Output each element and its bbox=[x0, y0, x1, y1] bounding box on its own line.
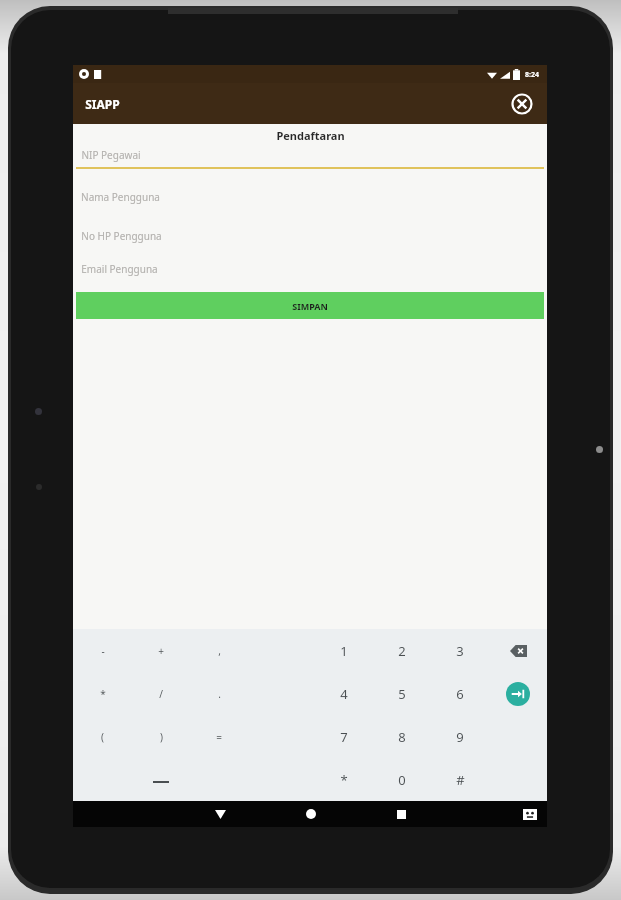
staticText: * bbox=[100, 687, 106, 701]
button[interactable]: Nama Pengguna bbox=[81, 190, 547, 204]
button[interactable]: ) bbox=[132, 715, 190, 758]
staticText: NIP Pegawai bbox=[81, 148, 141, 162]
staticText: . bbox=[218, 687, 221, 701]
staticText: SIMPAN bbox=[292, 300, 328, 312]
button[interactable]: 0 bbox=[373, 758, 431, 801]
button[interactable]: , bbox=[190, 629, 248, 672]
staticText: No HP Pengguna bbox=[81, 229, 162, 243]
button[interactable]: SIMPAN bbox=[76, 292, 544, 319]
button[interactable]: / bbox=[132, 672, 190, 715]
staticText: 9 bbox=[456, 728, 464, 746]
staticText: - bbox=[101, 644, 105, 658]
staticText: , bbox=[218, 644, 221, 658]
button[interactable]: - bbox=[73, 629, 132, 672]
button[interactable]: ( bbox=[73, 715, 132, 758]
button[interactable]: * bbox=[315, 758, 373, 801]
staticText: = bbox=[216, 730, 222, 744]
button[interactable]: 7 bbox=[315, 715, 373, 758]
staticText: / bbox=[159, 687, 163, 701]
staticText: Pendaftaran bbox=[276, 128, 345, 143]
button[interactable]: Recents bbox=[390, 803, 412, 825]
staticText: # bbox=[456, 771, 465, 789]
staticText: 4 bbox=[340, 685, 348, 703]
button[interactable]: NIP Pegawai bbox=[73, 148, 547, 169]
button[interactable]: No HP Pengguna bbox=[81, 229, 547, 243]
staticText: 8:24 bbox=[525, 70, 539, 79]
button[interactable]: # bbox=[431, 758, 489, 801]
button[interactable]: = bbox=[190, 715, 248, 758]
button[interactable]: 8 bbox=[373, 715, 431, 758]
staticText: 0 bbox=[398, 771, 406, 789]
button[interactable]: + bbox=[132, 629, 190, 672]
button[interactable]: Close bbox=[507, 89, 537, 119]
button[interactable]: 1 bbox=[315, 629, 373, 672]
button[interactable]: 9 bbox=[431, 715, 489, 758]
staticText: ) bbox=[160, 730, 163, 744]
staticText: SIAPP bbox=[85, 96, 120, 112]
button[interactable]: 6 bbox=[431, 672, 489, 715]
button[interactable]: 4 bbox=[315, 672, 373, 715]
button[interactable]: * bbox=[73, 672, 132, 715]
staticText: Nama Pengguna bbox=[81, 190, 160, 204]
staticText: 3 bbox=[456, 642, 464, 660]
button[interactable]: SIAPP bbox=[85, 96, 120, 112]
staticText: 6 bbox=[456, 685, 464, 703]
button[interactable]: Home bbox=[300, 803, 322, 825]
staticText: ( bbox=[101, 730, 104, 744]
staticText: * bbox=[340, 771, 348, 789]
staticText: 7 bbox=[340, 728, 348, 746]
button[interactable]: Email Pengguna bbox=[81, 262, 547, 276]
staticText: 5 bbox=[398, 685, 406, 703]
button[interactable]: Backspace bbox=[505, 640, 531, 662]
button[interactable]: Keyboard bbox=[523, 809, 537, 820]
button[interactable] bbox=[132, 758, 190, 801]
staticText: 8 bbox=[398, 728, 406, 746]
staticText: 2 bbox=[398, 642, 406, 660]
button[interactable]: 2 bbox=[373, 629, 431, 672]
button[interactable]: 5 bbox=[373, 672, 431, 715]
button[interactable]: 3 bbox=[431, 629, 489, 672]
staticText: 1 bbox=[340, 642, 348, 660]
staticText: + bbox=[158, 644, 164, 658]
staticText: Email Pengguna bbox=[81, 262, 158, 276]
button[interactable]: Enter bbox=[506, 682, 530, 706]
button[interactable]: Back bbox=[209, 803, 231, 825]
